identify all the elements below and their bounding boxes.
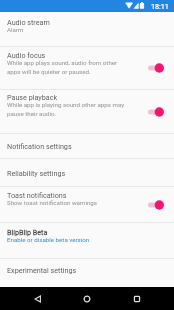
- staticText: Alarm: [7, 26, 24, 33]
- staticText: Notification settings: [7, 142, 72, 150]
- button[interactable]: Audio stream: [0, 12, 174, 46]
- button[interactable]: BlipBlip Beta: [0, 223, 174, 258]
- button[interactable]: Reliability settings: [0, 159, 174, 186]
- button[interactable]: Experimental settings: [0, 259, 174, 281]
- button[interactable]: Notification settings: [0, 134, 174, 158]
- staticText: Reliability settings: [7, 169, 66, 177]
- button[interactable]: Home: [75, 287, 99, 310]
- staticText: Experimental settings: [7, 266, 77, 274]
- button[interactable]: Back: [26, 287, 50, 310]
- staticText: Audio stream: [7, 18, 50, 26]
- button[interactable]: Audio focus: [0, 47, 174, 89]
- staticText: While app plays sound, audio from other …: [7, 59, 118, 75]
- staticText: 18:11: [151, 2, 169, 10]
- staticText: Audio focus: [7, 51, 46, 59]
- staticText: Show toast notification warnings: [7, 199, 98, 206]
- button[interactable]: Recent apps: [125, 287, 149, 310]
- staticText: Pause playback: [7, 93, 58, 101]
- staticText: Enable or disable beta version: [7, 236, 90, 243]
- staticText: While app is playing sound other apps ma…: [7, 101, 125, 117]
- staticText: BlipBlip Beta: [7, 228, 48, 236]
- button[interactable]: Pause playback: [0, 90, 174, 133]
- button[interactable]: Toast notifications: [0, 187, 174, 222]
- staticText: Toast notifications: [7, 191, 67, 199]
